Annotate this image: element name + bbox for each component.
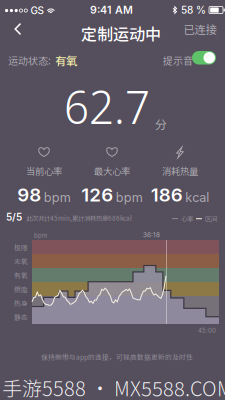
staticText: 有氧 [55, 52, 77, 68]
staticText: 最大心率 [94, 164, 130, 177]
staticText: 热身 [14, 298, 28, 308]
staticText: 已连接 [183, 21, 216, 37]
staticText: 186 [151, 183, 183, 206]
staticText: 有氧 [14, 270, 28, 280]
staticText: 45:00 [198, 327, 216, 334]
staticText: 区间 [205, 214, 217, 223]
staticText: 定制运动中 [81, 22, 161, 45]
staticText: 心率 [181, 214, 193, 223]
staticText: 运动状态: [8, 53, 51, 67]
staticText: 98 [17, 183, 41, 206]
staticText: 58 % [181, 4, 206, 16]
staticText: bpm [34, 232, 47, 239]
staticText: 5/5 [6, 211, 22, 223]
staticText: 36:18 [143, 231, 160, 239]
button[interactable]: 返回 [3, 17, 33, 41]
staticText: GS [30, 4, 43, 17]
staticText: 当前心率 [26, 164, 62, 177]
staticText: 提示音 [163, 53, 193, 67]
staticText: 9:41 AM [90, 3, 133, 16]
staticText: 此次共计45min,累计消耗热量686kcal [26, 213, 132, 223]
staticText: 62.7 [64, 74, 150, 138]
staticText: 保持腕带与app的连接，可提高数据更新的及时性 [41, 352, 193, 362]
staticText: kcal [185, 190, 209, 205]
staticText: 126 [81, 183, 113, 206]
staticText: 燃脂 [14, 284, 28, 294]
staticText: 极限 [14, 242, 28, 252]
staticText: 静态 [14, 312, 28, 322]
staticText: 消耗热量 [162, 164, 198, 177]
staticText: bpm [44, 190, 71, 205]
button[interactable]: 已连接 [180, 17, 220, 41]
button[interactable]: 提示音开关 [192, 51, 216, 64]
staticText: bpm [116, 190, 143, 205]
staticText: 分 [155, 115, 167, 133]
staticText: 无氧 [14, 256, 28, 266]
staticText: 手游5588 • MX5588.COM [2, 373, 225, 400]
